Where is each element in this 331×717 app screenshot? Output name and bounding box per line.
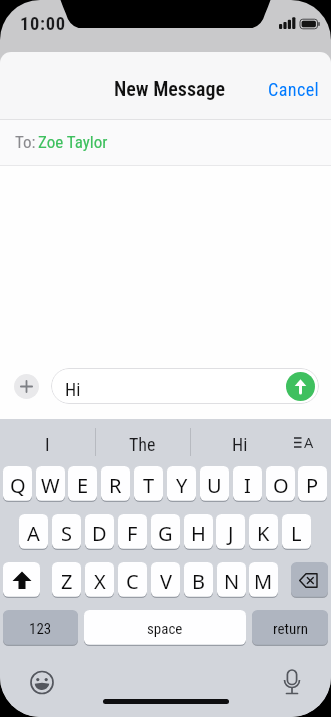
staticText: C bbox=[126, 568, 139, 595]
staticText: A bbox=[27, 520, 40, 547]
button[interactable]: P bbox=[298, 466, 327, 502]
staticText: E bbox=[77, 472, 89, 499]
button[interactable]: G bbox=[151, 514, 180, 550]
button[interactable]: Cancel bbox=[262, 73, 326, 106]
button[interactable]: F bbox=[118, 514, 147, 550]
button[interactable]: C bbox=[118, 562, 147, 598]
staticText: H bbox=[191, 520, 206, 547]
button[interactable]: Z bbox=[52, 562, 81, 598]
staticText: I bbox=[244, 472, 251, 499]
staticText: V bbox=[160, 568, 172, 595]
staticText: Hi bbox=[65, 379, 81, 400]
button[interactable]: The bbox=[95, 421, 190, 467]
button[interactable]: U bbox=[200, 466, 229, 502]
button[interactable]: return bbox=[252, 610, 328, 646]
staticText: R bbox=[109, 472, 122, 499]
button[interactable]: E bbox=[68, 466, 97, 502]
button[interactable]: V bbox=[151, 562, 180, 598]
button[interactable]: M bbox=[249, 562, 278, 598]
button[interactable]: D bbox=[85, 514, 114, 550]
staticText: To: bbox=[15, 132, 36, 152]
button[interactable]: A bbox=[19, 514, 48, 550]
staticText: 10:00 bbox=[20, 13, 66, 35]
button[interactable]: A bbox=[294, 429, 324, 455]
staticText: Hi bbox=[232, 434, 248, 455]
button[interactable] bbox=[280, 668, 304, 698]
button[interactable]: S bbox=[52, 514, 81, 550]
staticText: Y bbox=[176, 472, 188, 499]
staticText: T bbox=[143, 472, 155, 499]
staticText: D bbox=[92, 520, 107, 547]
button[interactable] bbox=[14, 374, 39, 399]
staticText: N bbox=[224, 568, 240, 595]
button[interactable]: 123 bbox=[3, 610, 78, 646]
staticText: A bbox=[304, 432, 314, 452]
staticText: B bbox=[192, 568, 205, 595]
staticText: New Message bbox=[114, 77, 226, 100]
staticText: F bbox=[127, 520, 138, 547]
staticText: Z bbox=[61, 568, 73, 595]
button[interactable] bbox=[286, 372, 315, 401]
button[interactable]: R bbox=[101, 466, 130, 502]
staticText: Cancel bbox=[268, 79, 320, 100]
button[interactable]: B bbox=[184, 562, 213, 598]
staticText: The bbox=[129, 434, 156, 455]
staticText: S bbox=[61, 520, 72, 547]
button[interactable]: L bbox=[282, 514, 311, 550]
button[interactable]: W bbox=[36, 466, 65, 502]
button[interactable] bbox=[3, 562, 40, 598]
button[interactable]: space bbox=[84, 610, 246, 646]
staticText: L bbox=[291, 520, 302, 547]
staticText: Zoe Taylor bbox=[38, 132, 108, 152]
button[interactable]: Hi bbox=[190, 421, 290, 467]
button[interactable]: Q bbox=[3, 466, 32, 502]
staticText: K bbox=[257, 520, 270, 547]
button[interactable]: I bbox=[233, 466, 262, 502]
button[interactable]: X bbox=[85, 562, 114, 598]
staticText: M bbox=[254, 568, 273, 595]
button[interactable]: I bbox=[0, 421, 95, 467]
staticText: P bbox=[306, 472, 319, 499]
staticText: return bbox=[273, 620, 308, 638]
staticText: U bbox=[207, 472, 222, 499]
button[interactable]: T bbox=[134, 466, 163, 502]
button[interactable]: Hi bbox=[51, 368, 319, 404]
staticText: space bbox=[147, 620, 183, 638]
button[interactable]: Y bbox=[167, 466, 196, 502]
button[interactable] bbox=[291, 562, 328, 598]
button[interactable]: J bbox=[216, 514, 245, 550]
button[interactable]: To: bbox=[0, 120, 331, 166]
button[interactable]: N bbox=[217, 562, 246, 598]
button[interactable] bbox=[28, 669, 56, 697]
staticText: 123 bbox=[29, 620, 52, 638]
button[interactable]: K bbox=[249, 514, 278, 550]
staticText: Q bbox=[10, 472, 26, 499]
button[interactable]: O bbox=[266, 466, 295, 502]
button[interactable]: H bbox=[184, 514, 213, 550]
staticText: I bbox=[45, 434, 50, 455]
staticText: O bbox=[273, 472, 289, 499]
staticText: X bbox=[94, 568, 106, 595]
staticText: G bbox=[158, 520, 173, 547]
staticText: W bbox=[41, 472, 60, 499]
staticText: J bbox=[228, 520, 234, 547]
